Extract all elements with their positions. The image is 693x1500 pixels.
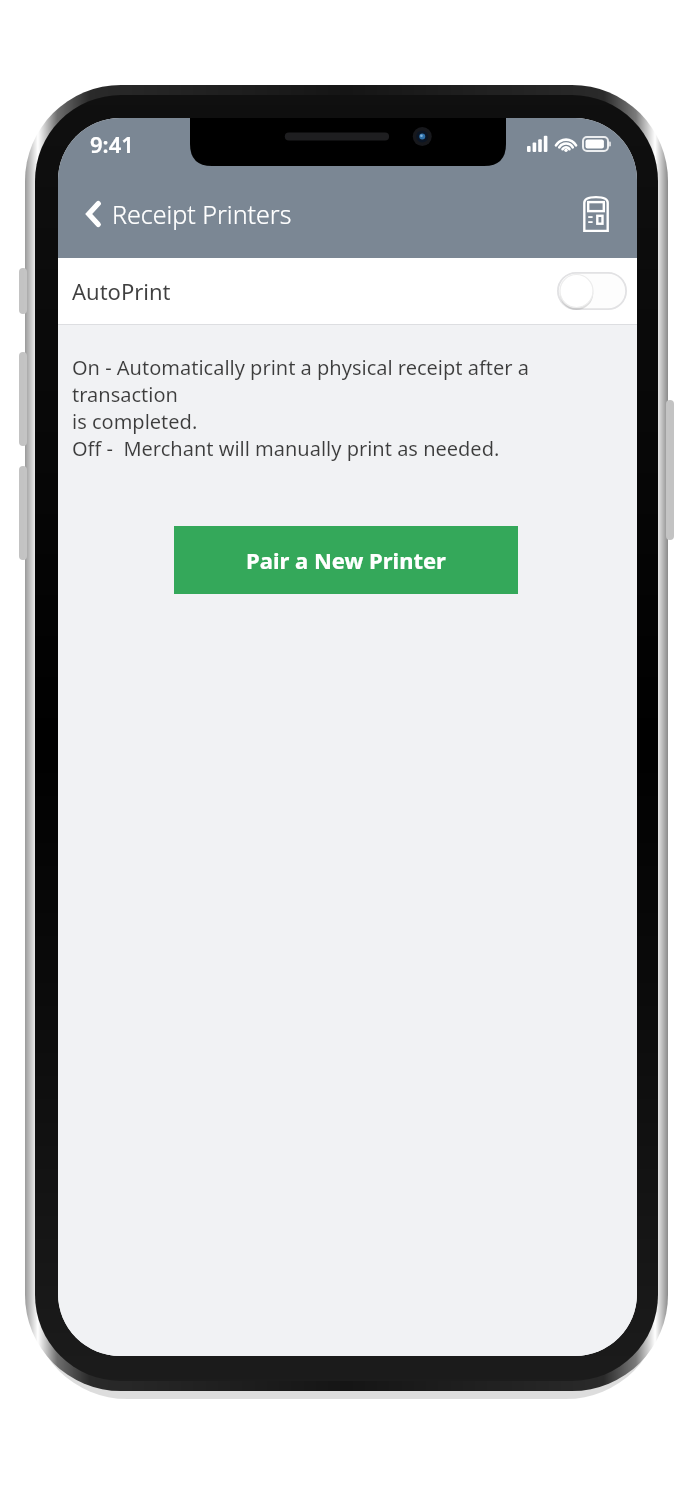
button[interactable]: Receipt Printers [80,189,298,239]
staticText: AutoPrint [72,276,171,306]
button[interactable]: AutoPrint [58,258,637,324]
staticText: 9:41 [90,129,134,159]
staticText: Receipt Printers [112,197,292,231]
button[interactable]: AutoPrint toggle, off [557,272,627,310]
staticText: Pair a New Printer [246,545,446,575]
button[interactable]: Pair a New Printer [174,526,518,594]
button[interactable]: Printer device [573,191,619,237]
staticText: On - Automatically print a physical rece… [72,354,625,462]
